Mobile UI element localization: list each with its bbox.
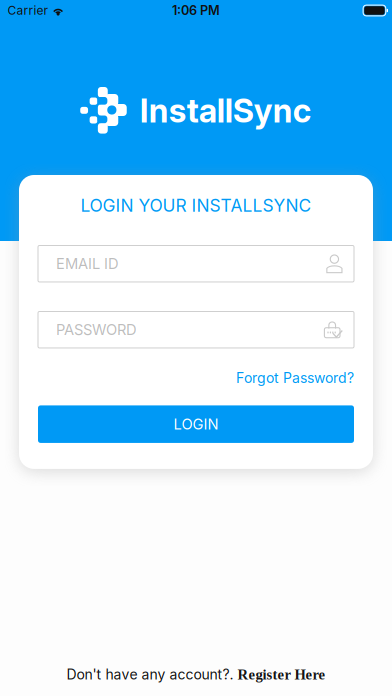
staticText: InstallSync	[140, 91, 312, 130]
staticText: Carrier	[7, 3, 48, 18]
staticText: EMAIL ID	[56, 255, 119, 272]
button[interactable]: LOGIN	[38, 405, 354, 443]
button[interactable]: PASSWORD	[38, 311, 354, 348]
button[interactable]: Register Here	[237, 666, 325, 683]
staticText: LOGIN YOUR INSTALLSYNC	[80, 195, 311, 216]
button[interactable]: EMAIL ID	[38, 245, 354, 282]
staticText: LOGIN	[173, 415, 218, 433]
button[interactable]: Forgot Password?	[236, 369, 354, 386]
staticText: 1:06 PM	[172, 3, 220, 18]
staticText: Don't have any account?.	[66, 666, 233, 683]
staticText: Forgot Password?	[236, 369, 354, 386]
staticText: PASSWORD	[56, 321, 137, 338]
staticText: Register Here	[237, 666, 325, 683]
